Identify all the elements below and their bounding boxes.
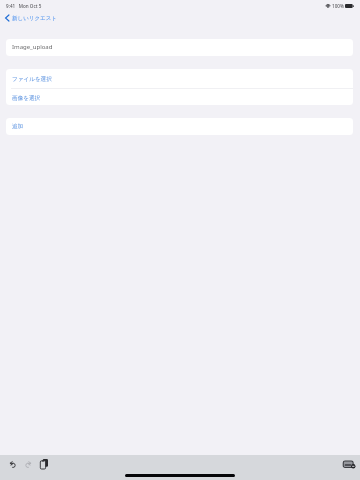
button[interactable]: ファイルを選択 bbox=[6, 69, 353, 88]
button[interactable]: Redo bbox=[20, 456, 36, 472]
staticText: 9:41 Mon Oct 5 bbox=[6, 3, 42, 9]
button[interactable]: Hide keyboard bbox=[341, 456, 357, 472]
staticText: ファイルを選択 bbox=[12, 76, 52, 83]
staticText: Image_upload bbox=[12, 43, 53, 51]
staticText: 新しいリクエスト bbox=[12, 15, 57, 22]
button[interactable]: 画像を選択 bbox=[6, 89, 353, 105]
button[interactable]: Undo bbox=[4, 456, 20, 472]
button[interactable]: Paste bbox=[36, 456, 52, 472]
button[interactable]: 新しいリクエスト bbox=[4, 12, 57, 24]
button[interactable]: 追加 bbox=[6, 118, 353, 135]
staticText: 追加 bbox=[12, 123, 24, 130]
staticText: 100% bbox=[332, 3, 344, 9]
staticText: 画像を選択 bbox=[12, 95, 41, 102]
